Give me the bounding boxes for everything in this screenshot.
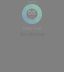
staticText: BPM xyxy=(29,17,35,20)
staticText: Daily Goal xyxy=(23,25,41,31)
staticText: Activity xyxy=(27,0,36,4)
staticText: 68 xyxy=(28,8,36,17)
